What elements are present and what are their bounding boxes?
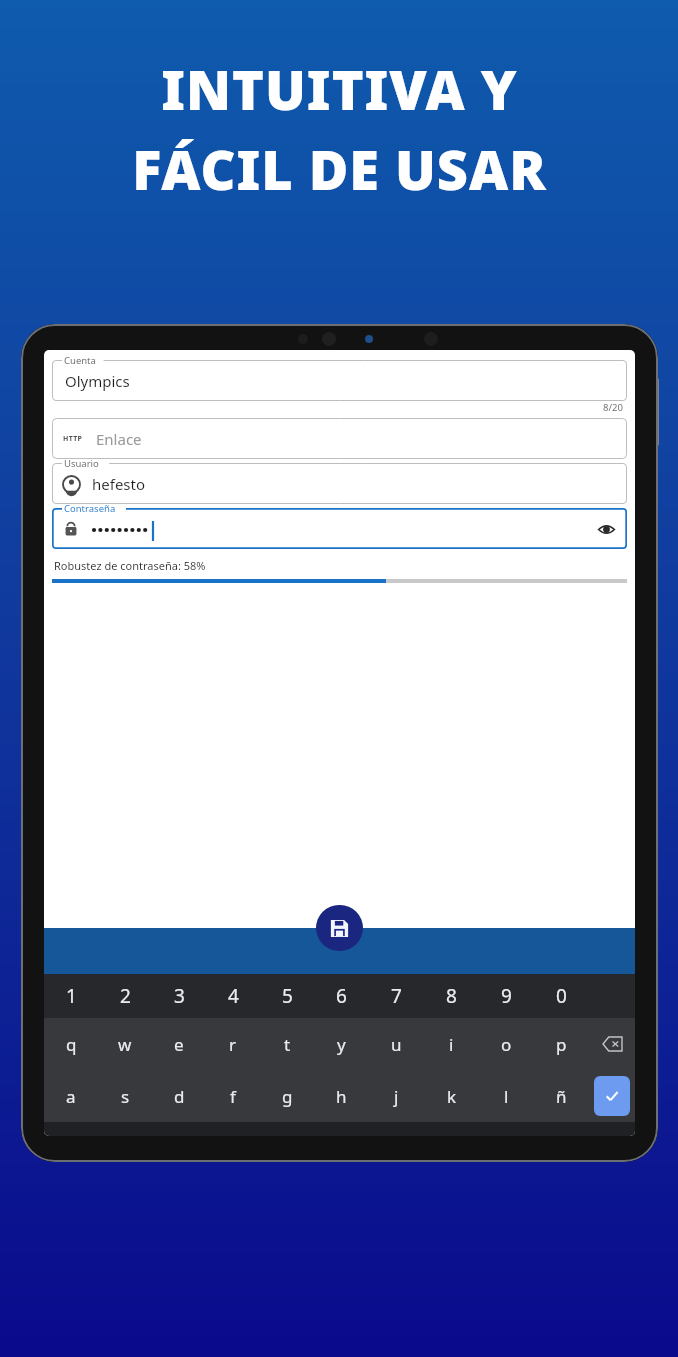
button[interactable]: 3 [152,974,206,1018]
button[interactable]: h [314,1070,369,1122]
staticText: r [229,1033,237,1056]
staticText: 3 [174,983,185,1009]
staticText: Robustez de contraseña: 58% [54,558,206,573]
staticText: Enlace [96,429,142,449]
button[interactable]: p [534,1018,589,1070]
button[interactable]: e [152,1018,206,1070]
staticText: FÁCIL DE USAR [132,132,547,206]
button[interactable]: Cuenta [52,360,627,401]
staticText: q [66,1033,77,1056]
staticText: e [174,1033,184,1056]
staticText: o [501,1033,512,1056]
staticText: 1 [66,983,77,1009]
button[interactable]: Mostrar contraseña [589,512,623,546]
button[interactable]: 9 [479,974,534,1018]
button[interactable]: o [479,1018,534,1070]
button[interactable]: 8 [424,974,479,1018]
staticText: 4 [228,983,239,1009]
staticText: ñ [556,1085,567,1108]
button[interactable]: d [152,1070,206,1122]
staticText: w [118,1033,132,1056]
staticText: u [391,1033,402,1056]
staticText: k [447,1085,457,1108]
button[interactable]: t [260,1018,314,1070]
button[interactable]: a [44,1070,98,1122]
button[interactable]: k [424,1070,479,1122]
button[interactable]: 1 [44,974,98,1018]
button[interactable]: 6 [314,974,369,1018]
button[interactable]: f [206,1070,260,1122]
staticText: 0 [556,983,567,1009]
staticText: l [504,1085,509,1108]
staticText: t [284,1033,291,1056]
button[interactable]: Aceptar [594,1076,630,1116]
button[interactable]: r [206,1018,260,1070]
staticText: y [337,1033,346,1056]
staticText: g [282,1085,293,1108]
staticText: hefesto [92,474,146,494]
button[interactable]: Guardar [316,905,363,951]
staticText: Usuario [64,457,99,470]
staticText: 8 [446,983,457,1009]
staticText: d [174,1085,185,1108]
button[interactable]: q [44,1018,98,1070]
staticText: Cuenta [64,354,96,367]
button[interactable]: Contraseña [52,508,627,549]
staticText: h [336,1085,347,1108]
button[interactable]: ñ [534,1070,589,1122]
button[interactable]: Borrar [589,1018,635,1070]
button[interactable]: j [369,1070,424,1122]
button[interactable]: u [369,1018,424,1070]
staticText: j [394,1085,399,1108]
staticText: 2 [120,983,131,1009]
staticText: HTTP [63,434,83,444]
staticText: 5 [282,983,293,1009]
staticText: p [556,1033,567,1056]
staticText: 7 [391,983,402,1009]
staticText: Olympics [65,371,130,391]
button[interactable]: 7 [369,974,424,1018]
button[interactable]: 4 [206,974,260,1018]
button[interactable]: 0 [534,974,589,1018]
staticText: a [66,1085,76,1108]
button[interactable]: w [98,1018,152,1070]
button[interactable]: i [424,1018,479,1070]
staticText: INTUITIVA Y [161,52,518,126]
button[interactable]: g [260,1070,314,1122]
staticText: s [121,1085,130,1108]
staticText: 9 [501,983,512,1009]
button[interactable]: 5 [260,974,314,1018]
button[interactable]: y [314,1018,369,1070]
staticText: f [230,1085,236,1108]
button[interactable]: l [479,1070,534,1122]
staticText: Contraseña [64,502,116,515]
button[interactable]: HTTP [52,418,627,459]
staticText: i [449,1033,454,1056]
staticText: 8/20 [603,401,623,414]
button[interactable]: Usuario [52,463,627,504]
button[interactable]: 2 [98,974,152,1018]
button[interactable]: s [98,1070,152,1122]
staticText: 6 [336,983,347,1009]
